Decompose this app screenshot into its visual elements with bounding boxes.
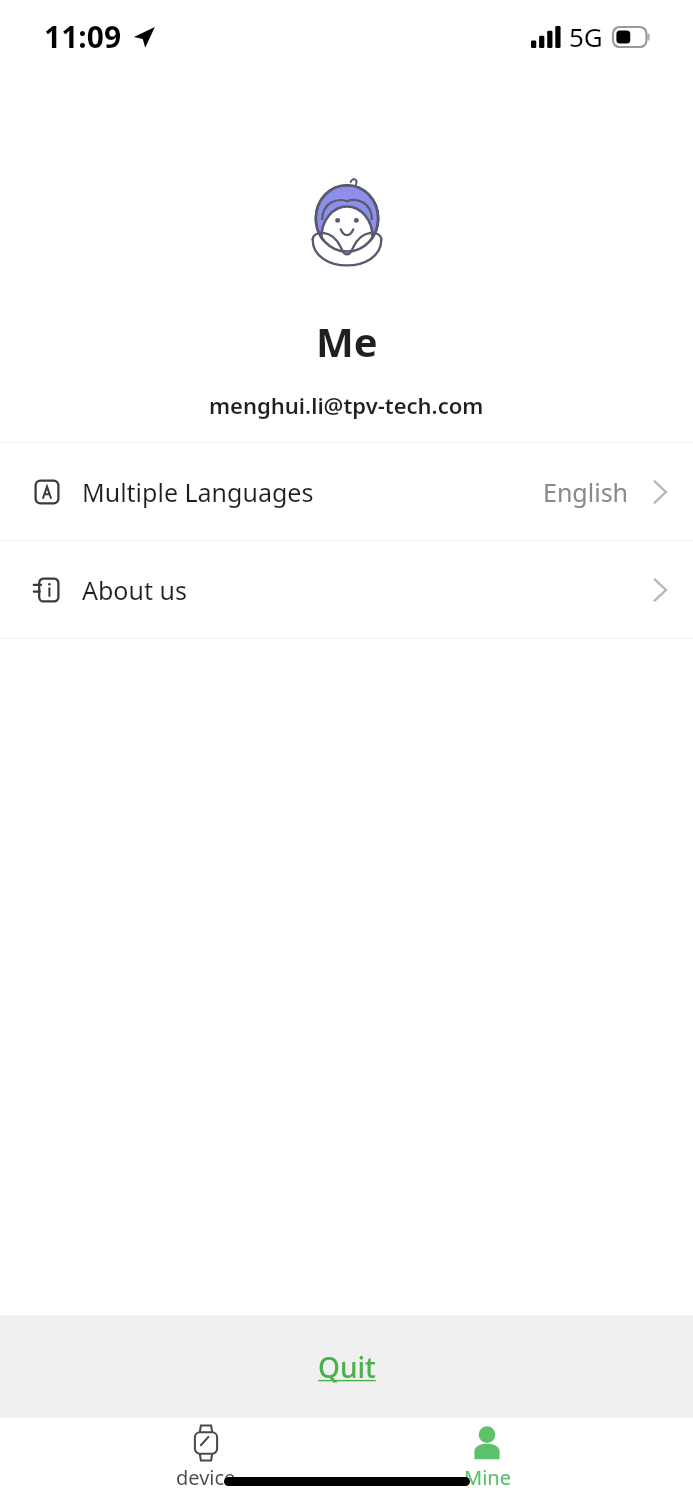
button[interactable]: device [131, 1418, 281, 1491]
staticText: Me [316, 314, 378, 368]
staticText: English [543, 475, 629, 509]
staticText: Mine [464, 1464, 511, 1491]
button[interactable]: Mine [412, 1418, 562, 1491]
button[interactable]: About us [0, 541, 693, 638]
staticText: device [176, 1464, 236, 1491]
staticText: 11:09 [44, 16, 122, 57]
staticText: Quit [318, 1348, 376, 1386]
staticText: menghui.li@tpv-tech.com [209, 390, 484, 420]
staticText: 5G [569, 19, 603, 54]
other: device [191, 1424, 221, 1462]
button[interactable]: Quit [0, 1315, 693, 1418]
other: Mine [470, 1424, 504, 1462]
button[interactable]: Multiple Languages [0, 443, 693, 540]
staticText: About us [82, 573, 187, 607]
staticText: Multiple Languages [82, 475, 314, 509]
